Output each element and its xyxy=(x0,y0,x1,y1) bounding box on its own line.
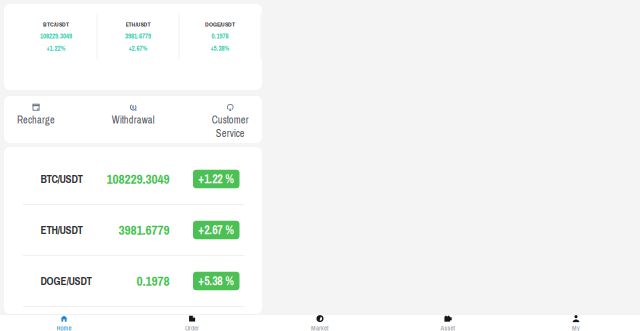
staticText: 108229.3049 xyxy=(106,170,169,188)
staticText: DOGE/USDT xyxy=(40,274,91,288)
staticText: Home xyxy=(56,324,71,331)
staticText: +1.22% xyxy=(46,44,65,53)
staticText: +5.38 % xyxy=(198,273,234,289)
staticText: 108229.3049 xyxy=(40,32,72,41)
button[interactable]: Order xyxy=(128,315,256,331)
staticText: Service xyxy=(216,126,245,140)
button[interactable]: Asset xyxy=(384,315,512,331)
button[interactable]: ETH/USDT xyxy=(97,13,178,59)
button[interactable]: Customer xyxy=(198,96,262,143)
staticText: 3981.6779 xyxy=(125,32,151,41)
staticText: Order xyxy=(185,324,199,331)
staticText: DOGE/USDT xyxy=(205,20,235,28)
staticText: ETH/USDT xyxy=(125,20,150,28)
button[interactable]: BTC/USDT xyxy=(4,154,262,204)
staticText: 3981.6779 xyxy=(118,221,169,239)
staticText: +2.67% xyxy=(128,44,147,53)
staticText: Asset xyxy=(440,324,455,331)
staticText: +2.67 % xyxy=(198,222,234,238)
staticText: Recharge xyxy=(17,113,55,126)
button[interactable]: Withdrawal xyxy=(101,96,165,143)
staticText: Customer xyxy=(212,113,249,126)
button[interactable]: ETH/USDT xyxy=(4,205,262,255)
staticText: Withdrawal xyxy=(112,113,155,126)
staticText: +5.38% xyxy=(210,44,229,53)
button[interactable]: My xyxy=(512,315,640,331)
button[interactable]: BTC/USDT xyxy=(15,13,96,59)
staticText: ETH/USDT xyxy=(40,223,82,237)
staticText: 0.1978 xyxy=(136,272,169,290)
button[interactable]: Home xyxy=(0,315,128,331)
staticText: Market xyxy=(311,324,329,331)
staticText: 0.1978 xyxy=(211,32,228,41)
button[interactable]: Market xyxy=(256,315,384,331)
button[interactable]: DOGE/USDT xyxy=(179,13,260,59)
button[interactable]: DOGE/USDT xyxy=(4,256,262,306)
button[interactable]: Recharge xyxy=(4,96,68,143)
staticText: BTC/USDT xyxy=(43,20,69,28)
staticText: BTC/USDT xyxy=(40,172,82,186)
staticText: My xyxy=(572,324,580,331)
staticText: +1.22 % xyxy=(198,171,234,187)
